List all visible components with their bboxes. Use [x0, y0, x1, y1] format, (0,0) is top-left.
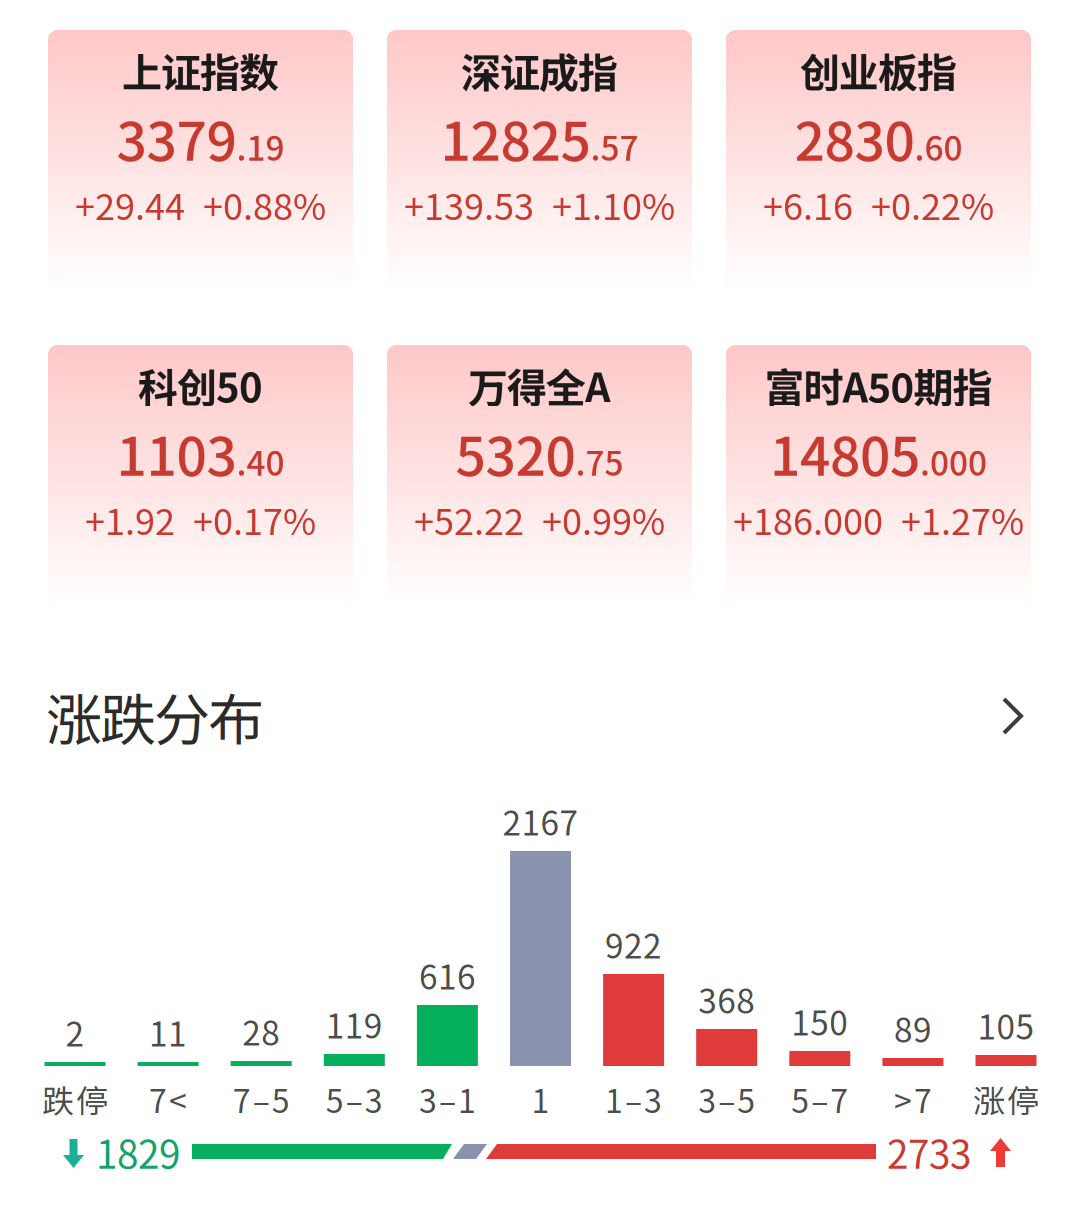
- staticText: 105: [977, 1001, 1034, 1049]
- staticText: +1.92: [85, 493, 175, 545]
- staticText: +52.22: [414, 493, 524, 545]
- staticText: 14805: [770, 414, 920, 491]
- staticText: 深证成指: [461, 41, 618, 99]
- staticText: .19: [236, 122, 284, 170]
- staticText: +139.53: [404, 178, 534, 230]
- staticText: +0.88%: [203, 178, 326, 230]
- staticText: 2830: [794, 99, 914, 176]
- staticText: 跌停: [42, 1076, 108, 1122]
- staticText: 616: [419, 951, 476, 999]
- staticText: +1.27%: [901, 493, 1024, 545]
- staticText: 上证指数: [122, 41, 279, 99]
- staticText: +186.000: [733, 493, 883, 545]
- button[interactable]: 科创50: [48, 345, 353, 602]
- staticText: 3379: [116, 99, 236, 176]
- staticText: +0.99%: [542, 493, 665, 545]
- staticText: 创业板指: [800, 41, 957, 99]
- staticText: 2: [65, 1008, 84, 1056]
- staticText: 2733: [887, 1124, 971, 1180]
- staticText: 28: [242, 1007, 280, 1055]
- staticText: 1: [531, 1076, 549, 1122]
- staticText: 3–5: [698, 1076, 755, 1122]
- staticText: .75: [575, 437, 623, 485]
- staticText: 11: [149, 1008, 187, 1056]
- staticText: 5–7: [791, 1076, 848, 1122]
- staticText: +0.17%: [193, 493, 316, 545]
- staticText: .57: [590, 122, 638, 170]
- staticText: 150: [791, 997, 848, 1045]
- staticText: 119: [326, 1000, 383, 1048]
- staticText: 5320: [455, 414, 575, 491]
- staticText: 7–5: [233, 1076, 290, 1122]
- staticText: 1103: [116, 414, 236, 491]
- staticText: +29.44: [75, 178, 185, 230]
- staticText: 涨停: [973, 1076, 1039, 1122]
- button[interactable]: 万得全A: [387, 345, 692, 602]
- staticText: .40: [236, 437, 284, 485]
- staticText: 科创50: [138, 356, 263, 414]
- staticText: .60: [914, 122, 962, 170]
- staticText: 涨跌分布: [46, 675, 264, 757]
- staticText: 富时A50期指: [764, 356, 992, 414]
- staticText: 7<: [149, 1076, 187, 1122]
- button[interactable]: 创业板指: [726, 30, 1031, 287]
- staticText: +1.10%: [552, 178, 675, 230]
- staticText: +0.22%: [871, 178, 994, 230]
- staticText: 2167: [502, 797, 578, 845]
- staticText: 5–3: [326, 1076, 383, 1122]
- staticText: 万得全A: [468, 356, 611, 414]
- staticText: >7: [894, 1076, 932, 1122]
- staticText: .000: [920, 437, 987, 485]
- staticText: 89: [894, 1004, 932, 1052]
- staticText: 1–3: [605, 1076, 662, 1122]
- staticText: 3–1: [419, 1076, 476, 1122]
- staticText: 1829: [96, 1124, 180, 1180]
- button[interactable]: 上证指数: [48, 30, 353, 287]
- staticText: 922: [605, 920, 662, 968]
- button[interactable]: 富时A50期指: [726, 345, 1031, 602]
- button[interactable]: 深证成指: [387, 30, 692, 287]
- staticText: +6.16: [763, 178, 853, 230]
- staticText: 12825: [440, 99, 590, 176]
- staticText: 368: [698, 975, 755, 1023]
- button[interactable]: 涨跌分布: [0, 666, 1080, 766]
